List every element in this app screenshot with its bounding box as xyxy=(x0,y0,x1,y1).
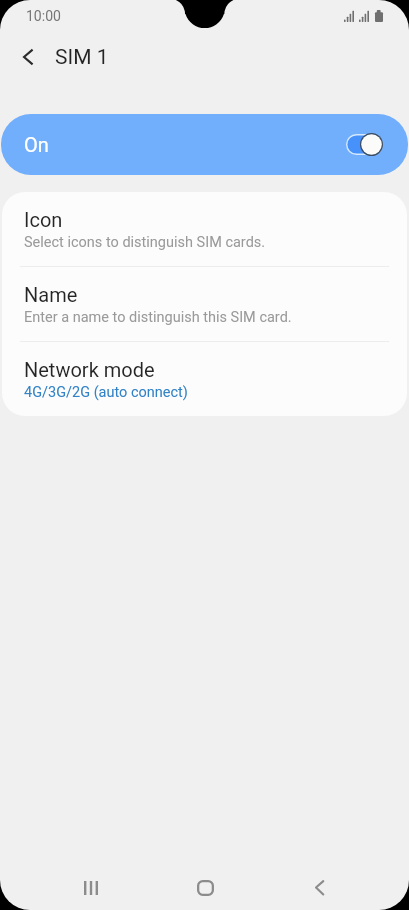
staticText: Select icons to distinguish SIM cards. xyxy=(24,234,266,251)
staticText: Name xyxy=(24,283,78,306)
button[interactable]: Navigate up xyxy=(3,32,53,82)
staticText: Network mode xyxy=(24,358,155,381)
button[interactable]: Back xyxy=(262,865,376,910)
staticText: On xyxy=(24,133,49,156)
staticText: 4G/3G/2G (auto connect) xyxy=(24,384,188,401)
staticText: Icon xyxy=(24,208,63,231)
staticText: 10:00 xyxy=(26,8,61,24)
button[interactable]: Icon xyxy=(2,192,407,266)
button[interactable]: Home xyxy=(148,865,262,910)
staticText: Enter a name to distinguish this SIM car… xyxy=(24,309,292,326)
button[interactable]: Name xyxy=(2,267,407,341)
staticText: SIM 1 xyxy=(55,45,109,70)
button[interactable]: On xyxy=(1,114,408,175)
button[interactable]: Network mode xyxy=(2,342,407,416)
button[interactable]: Recent apps xyxy=(34,865,148,910)
